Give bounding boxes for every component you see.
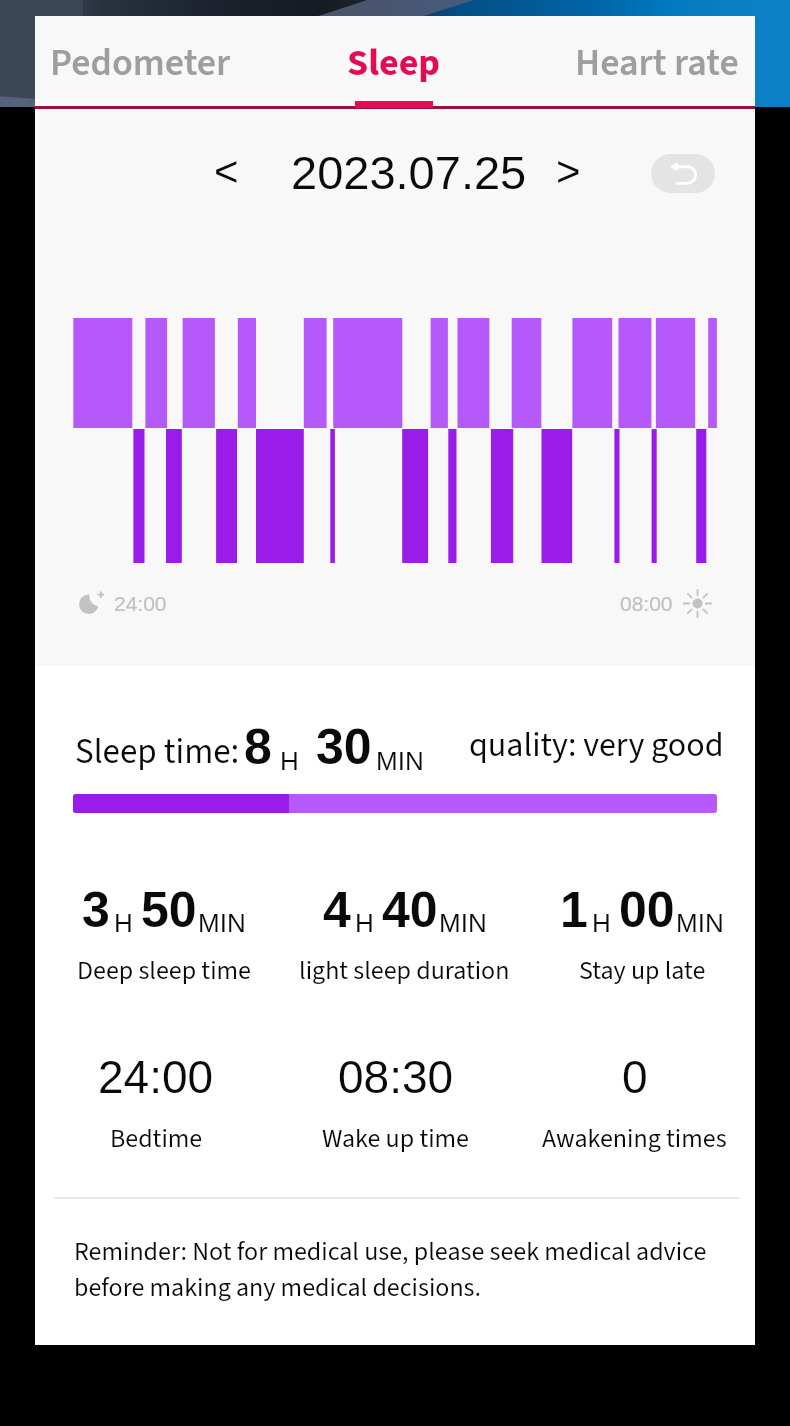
staticText: 50: [141, 882, 197, 938]
staticText: 1: [560, 882, 588, 938]
staticText: 24:00: [98, 1051, 214, 1102]
staticText: Reminder: Not for medical use, please se…: [74, 1233, 707, 1306]
button[interactable]: Reset: [651, 154, 715, 193]
button[interactable]: Pedometer: [20, 16, 260, 105]
button[interactable]: Next day: [545, 148, 591, 194]
staticText: Sleep: [347, 36, 441, 90]
staticText: Wake up time: [322, 1120, 470, 1157]
staticText: light sleep duration: [299, 952, 510, 989]
staticText: MIN: [198, 908, 246, 937]
staticText: Sleep time:: [75, 727, 240, 777]
staticText: >: [556, 148, 581, 194]
staticText: MIN: [439, 908, 487, 937]
staticText: 40: [382, 882, 438, 938]
staticText: 30: [316, 719, 372, 775]
staticText: 4: [323, 882, 351, 938]
staticText: Bedtime: [110, 1120, 203, 1157]
staticText: 00: [619, 882, 675, 938]
staticText: H: [592, 908, 611, 937]
staticText: Awakening times: [542, 1120, 727, 1157]
staticText: 8: [244, 719, 272, 775]
staticText: MIN: [676, 908, 724, 937]
staticText: 0: [622, 1051, 648, 1102]
button[interactable]: Sleep: [274, 16, 514, 105]
staticText: Deep sleep time: [77, 952, 251, 989]
button[interactable]: Heart rate: [537, 16, 777, 105]
staticText: Heart rate: [575, 36, 739, 90]
staticText: H: [355, 908, 374, 937]
staticText: H: [114, 908, 133, 937]
staticText: 08:30: [338, 1051, 454, 1102]
staticText: 2023.07.25: [291, 146, 527, 199]
staticText: <: [214, 148, 239, 194]
staticText: 08:00: [620, 592, 673, 615]
staticText: 3: [82, 882, 110, 938]
staticText: 24:00: [114, 592, 167, 615]
staticText: Stay up late: [579, 952, 706, 989]
button[interactable]: Previous day: [203, 148, 249, 194]
staticText: H: [280, 746, 299, 775]
staticText: Pedometer: [50, 36, 231, 90]
staticText: quality: very good: [469, 721, 724, 769]
staticText: MIN: [376, 746, 424, 775]
